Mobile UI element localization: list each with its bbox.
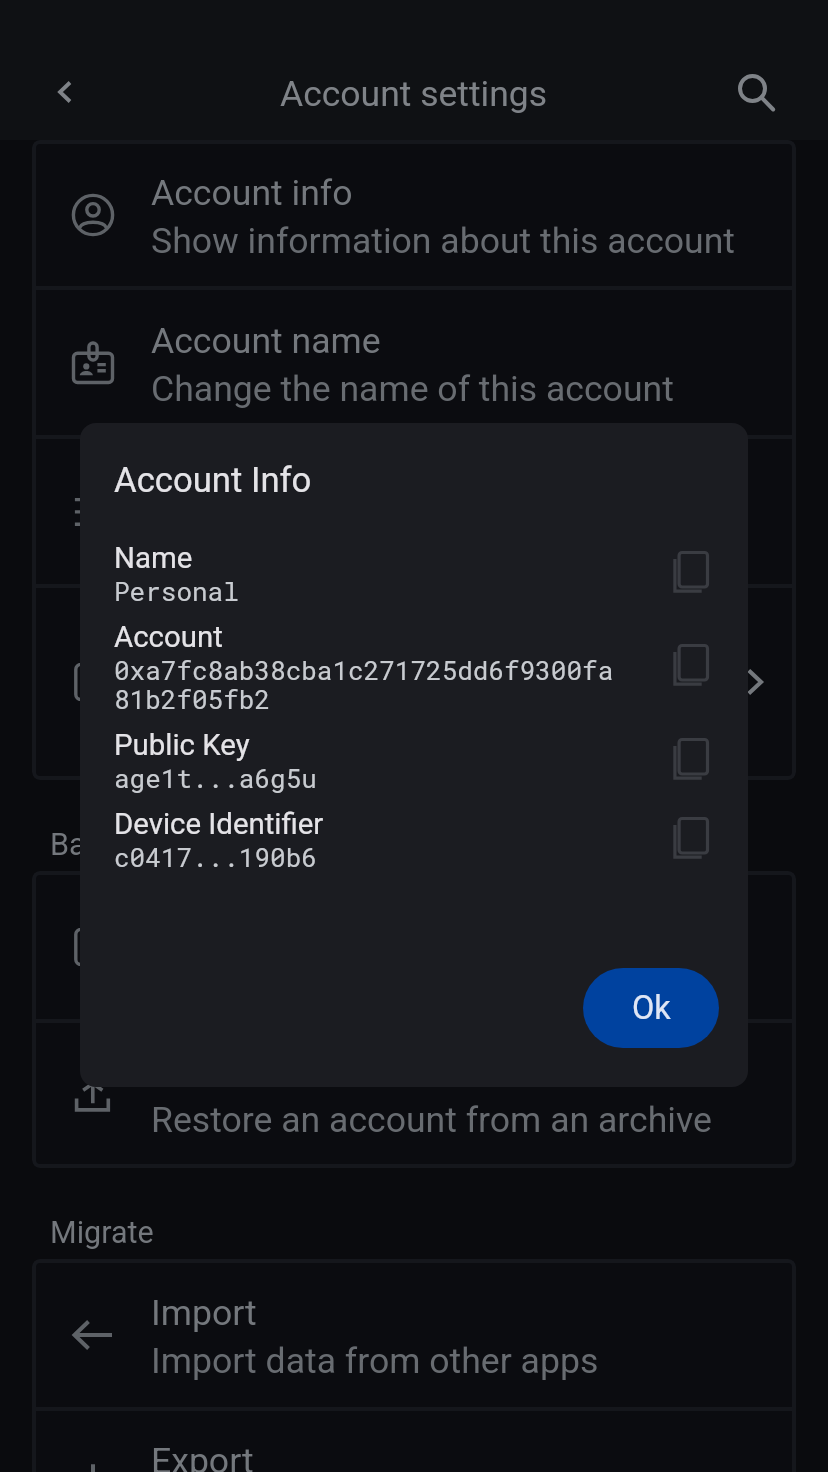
- staticText: Recovery phrase: [151, 610, 412, 658]
- staticText: Import: [151, 1287, 257, 1335]
- staticText: Personal: [114, 578, 239, 607]
- staticText: Account info: [151, 167, 353, 215]
- button[interactable]: Restore: [36, 1023, 792, 1164]
- staticText: 81b2f05fb2: [114, 686, 271, 715]
- staticText: Save an archive of this account: [151, 947, 643, 995]
- button[interactable]: Account name: [36, 290, 792, 435]
- staticText: Import data from other apps: [151, 1335, 599, 1383]
- staticText: Account: [114, 611, 223, 657]
- button[interactable]: Copy Name: [660, 542, 716, 598]
- button[interactable]: Copy Device Identifier: [660, 808, 716, 864]
- staticText: Show information about this account: [151, 215, 736, 263]
- button[interactable]: Ok: [583, 968, 719, 1048]
- button[interactable]: Recovery phrase: [36, 588, 792, 776]
- staticText: Show the recovery phrase of this account: [151, 658, 718, 754]
- staticText: age1t...a6g5u: [114, 765, 317, 794]
- button[interactable]: Search: [720, 56, 792, 128]
- staticText: Ok: [632, 989, 671, 1027]
- button[interactable]: Copy Public Key: [660, 729, 716, 785]
- button[interactable]: Backup: [36, 875, 792, 1019]
- staticText: Account description: [151, 440, 469, 488]
- staticText: Account Info: [114, 459, 312, 501]
- button[interactable]: Copy Account: [660, 635, 716, 691]
- button[interactable]: Account description: [36, 439, 792, 584]
- staticText: c0417...190b6: [114, 844, 317, 873]
- staticText: Restore: [151, 1046, 273, 1094]
- staticText: Public Key: [114, 719, 250, 765]
- staticText: Change the description of this account: [151, 488, 756, 584]
- staticText: Migrate: [50, 1213, 154, 1251]
- button[interactable]: Back: [29, 56, 101, 128]
- staticText: Backup: [50, 825, 151, 863]
- staticText: Device Identifier: [114, 798, 324, 844]
- staticText: Change the name of this account: [151, 363, 674, 411]
- button[interactable]: Export: [36, 1411, 792, 1472]
- staticText: Name: [114, 532, 193, 578]
- staticText: Account settings: [280, 68, 548, 116]
- button[interactable]: Account info: [36, 144, 792, 286]
- staticText: Export: [151, 1435, 254, 1472]
- button[interactable]: Import: [36, 1263, 792, 1407]
- staticText: 0xa7fc8ab38cba1c271725dd6f9300fa: [114, 657, 614, 686]
- staticText: Restore an account from an archive: [151, 1094, 712, 1142]
- staticText: Account name: [151, 315, 381, 363]
